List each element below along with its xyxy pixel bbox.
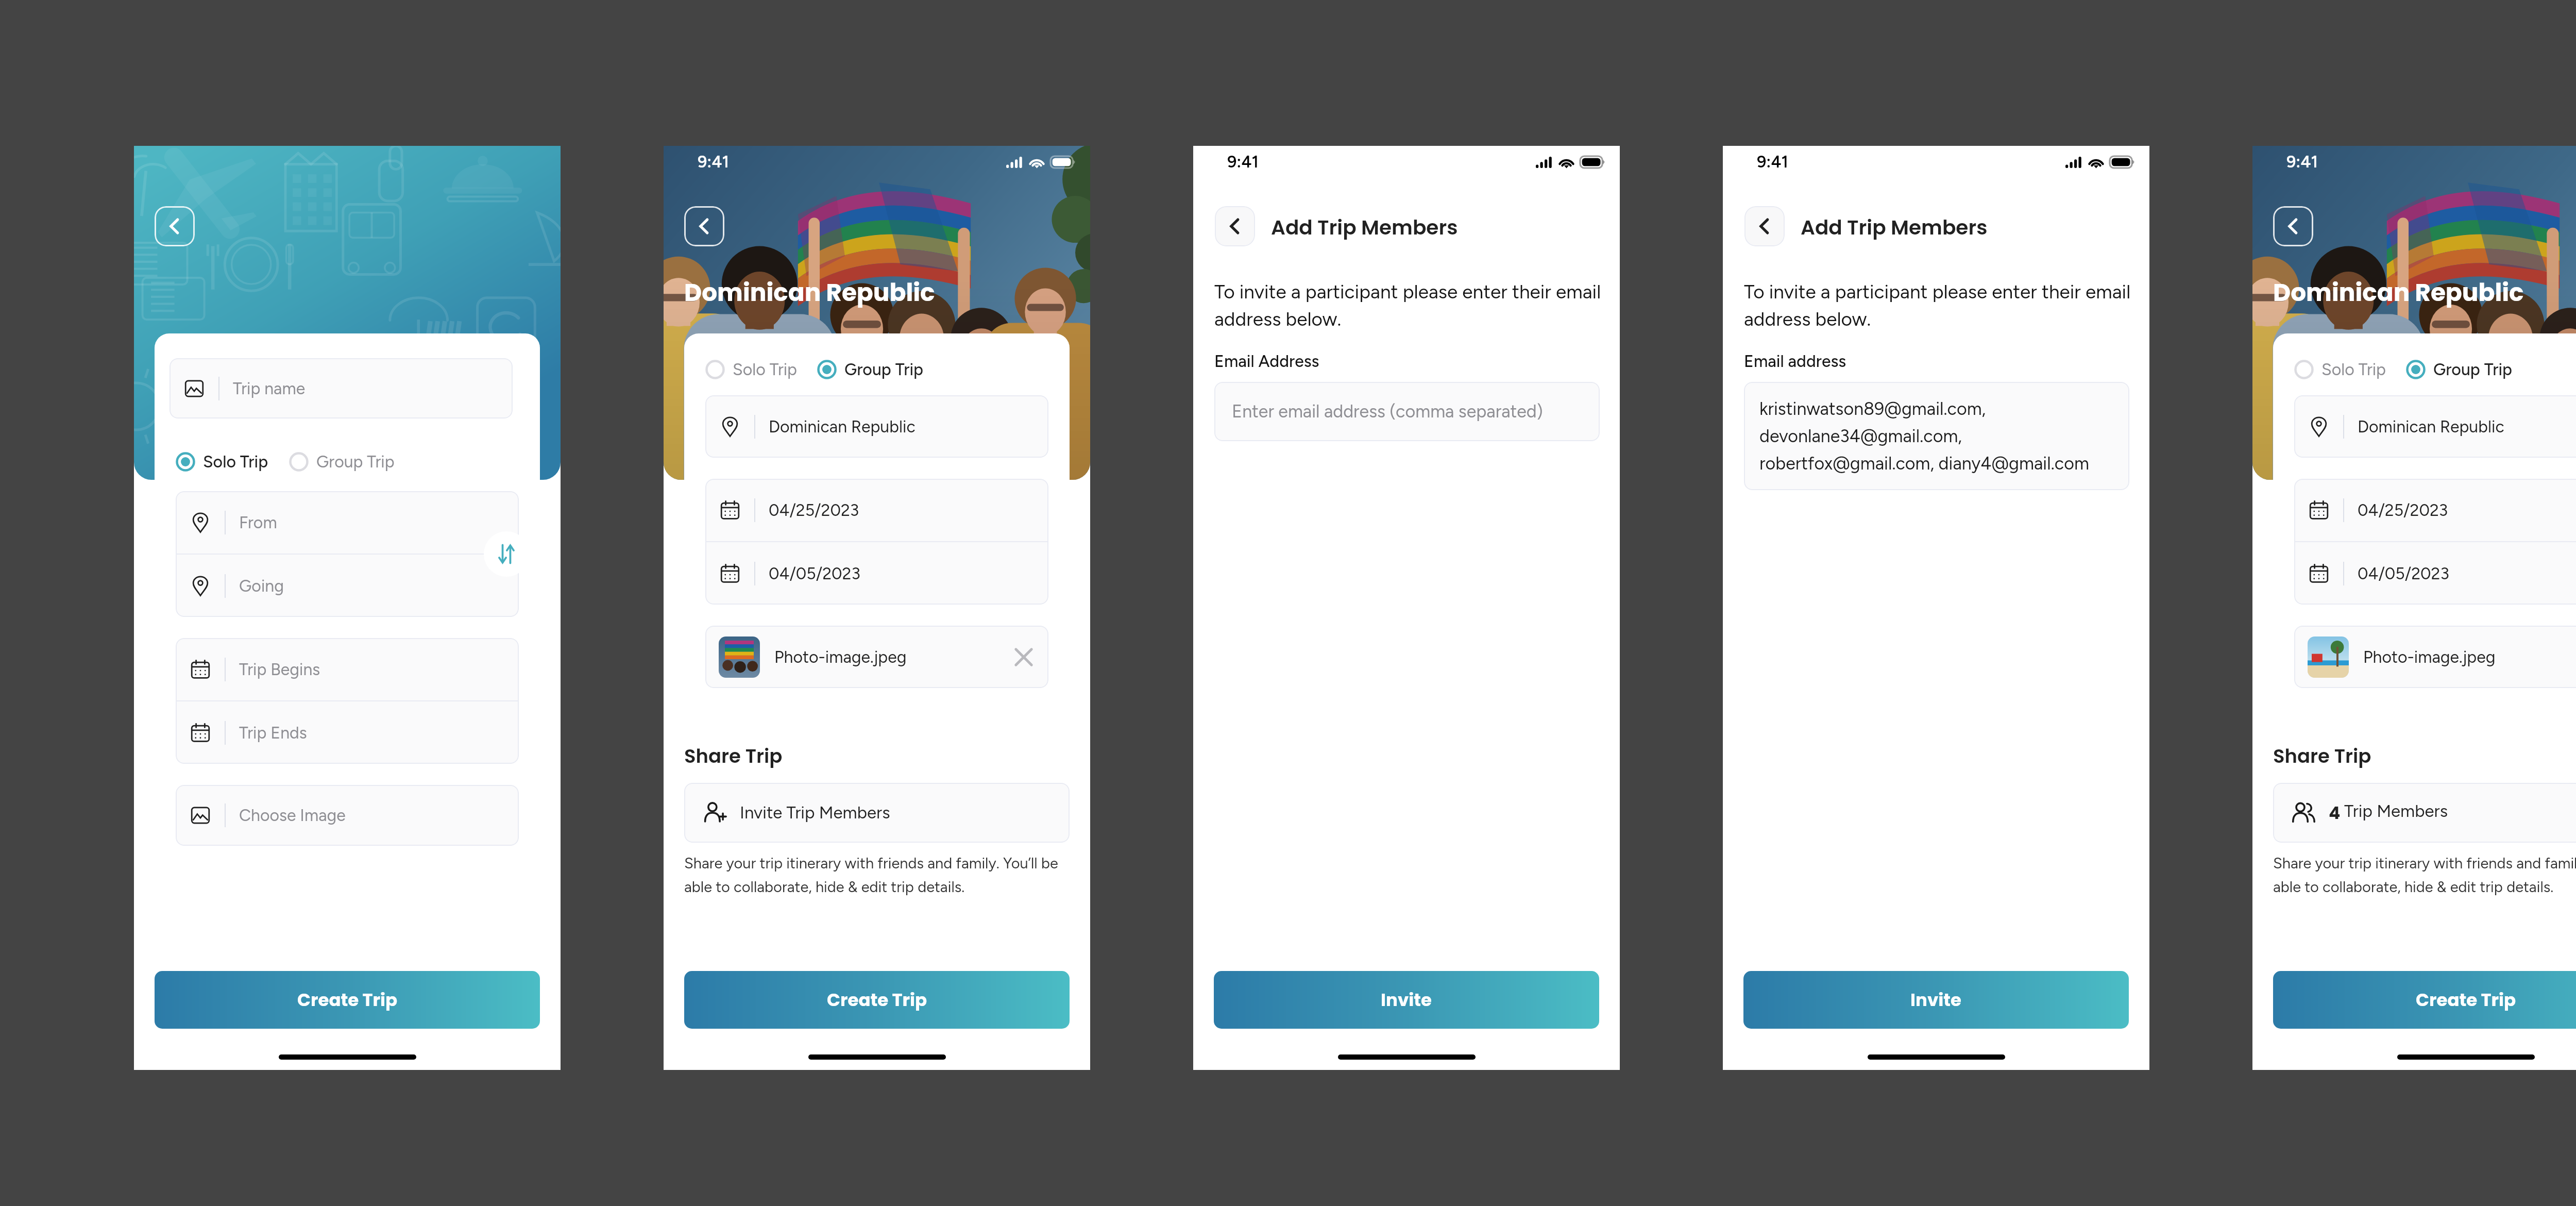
staticText: Share Trip xyxy=(2273,743,2371,769)
button[interactable]: Solo Trip xyxy=(705,360,798,379)
staticText: 9:41 xyxy=(1227,152,1259,172)
staticText: Group Trip xyxy=(844,360,924,379)
staticText: 9:41 xyxy=(1757,152,1788,172)
button[interactable]: Remove photo xyxy=(1009,643,1038,672)
staticText: Invite xyxy=(1381,987,1432,1012)
staticText: From xyxy=(239,513,277,532)
button[interactable]: Solo Trip xyxy=(2294,360,2386,379)
button[interactable]: Back xyxy=(155,206,195,246)
button[interactable]: Dominican Republic xyxy=(705,395,1048,458)
button[interactable]: Invite xyxy=(1214,971,1599,1029)
button[interactable]: Solo Trip xyxy=(176,452,268,472)
button[interactable]: Dominican Republic xyxy=(2294,395,2576,458)
button[interactable]: 4 xyxy=(2273,783,2576,843)
button[interactable]: Create Trip xyxy=(155,971,540,1029)
staticText: 04/25/2023 xyxy=(2358,500,2448,520)
staticText: 9:41 xyxy=(698,152,729,172)
staticText: Email Address xyxy=(1214,351,1319,371)
staticText: Create Trip xyxy=(297,987,398,1012)
button[interactable]: Photo-image.jpeg xyxy=(2294,626,2576,688)
button[interactable]: Swap from and going xyxy=(484,531,529,577)
staticText: Solo Trip xyxy=(203,452,268,472)
button[interactable]: Trip Ends xyxy=(176,701,519,764)
staticText: Dominican Republic xyxy=(769,417,916,437)
button[interactable]: Choose Image xyxy=(176,785,519,846)
staticText: Solo Trip xyxy=(733,360,798,379)
staticText: 04/05/2023 xyxy=(769,564,860,583)
staticText: Dominican Republic xyxy=(684,276,935,310)
staticText: Photo-image.jpeg xyxy=(2363,647,2496,667)
staticText: kristinwatson89@gmail.com, devonlane34@g… xyxy=(1759,398,2127,474)
button[interactable]: Trip name xyxy=(170,358,513,418)
button[interactable]: Back xyxy=(684,206,724,246)
staticText: 04/25/2023 xyxy=(769,500,859,520)
staticText: Trip Ends xyxy=(239,723,307,743)
staticText: Trip Members xyxy=(2344,801,2448,822)
button[interactable]: 04/05/2023 xyxy=(2294,542,2576,605)
staticText: 9:41 xyxy=(2286,152,2318,172)
staticText: 4 xyxy=(2329,801,2344,825)
staticText: Going xyxy=(239,576,284,596)
staticText: Group Trip xyxy=(316,452,395,472)
staticText: Create Trip xyxy=(827,987,927,1012)
staticText: Photo-image.jpeg xyxy=(774,647,907,667)
button[interactable]: Invite xyxy=(1743,971,2129,1029)
staticText: Trip Begins xyxy=(239,660,320,679)
staticText: To invite a participant please enter the… xyxy=(1214,280,1616,330)
staticText: Enter email address (comma separated) xyxy=(1232,401,1543,422)
staticText: Add Trip Members xyxy=(1271,213,1458,242)
button[interactable]: 04/25/2023 xyxy=(2294,479,2576,541)
button[interactable]: Group Trip xyxy=(2406,360,2513,379)
staticText: Dominican Republic xyxy=(2358,417,2504,437)
button[interactable]: Trip Begins xyxy=(176,638,519,700)
staticText: 04/05/2023 xyxy=(2358,564,2449,583)
staticText: Invite xyxy=(1910,987,1962,1012)
button[interactable]: Invite Trip Members xyxy=(684,783,1070,843)
button[interactable]: Group Trip xyxy=(817,360,924,379)
button[interactable]: Back xyxy=(1215,206,1255,246)
button[interactable]: Enter email address (comma separated) xyxy=(1214,382,1600,441)
staticText: Solo Trip xyxy=(2321,360,2386,379)
staticText: Trip name xyxy=(233,379,306,398)
button[interactable]: kristinwatson89@gmail.com, devonlane34@g… xyxy=(1744,382,2129,490)
button[interactable]: Group Trip xyxy=(289,452,395,472)
staticText: Create Trip xyxy=(2416,987,2516,1012)
staticText: Group Trip xyxy=(2433,360,2513,379)
staticText: Share Trip xyxy=(684,743,783,769)
staticText: Share your trip itinerary with friends a… xyxy=(684,854,1070,896)
staticText: Choose Image xyxy=(239,806,346,825)
button[interactable]: Photo-image.jpeg xyxy=(705,626,1048,688)
staticText: Add Trip Members xyxy=(1801,213,1988,242)
button[interactable]: From xyxy=(176,491,519,554)
button[interactable]: Going xyxy=(176,555,519,617)
staticText: Invite Trip Members xyxy=(740,802,890,823)
staticText: Share your trip itinerary with friends a… xyxy=(2273,854,2576,896)
button[interactable]: 04/25/2023 xyxy=(705,479,1048,541)
button[interactable]: Back xyxy=(2273,206,2313,246)
button[interactable]: Back xyxy=(1744,206,1785,246)
staticText: Dominican Republic xyxy=(2273,276,2524,310)
button[interactable]: Create Trip xyxy=(2273,971,2576,1029)
staticText: To invite a participant please enter the… xyxy=(1744,280,2146,330)
staticText: Email address xyxy=(1744,351,1846,371)
button[interactable]: Create Trip xyxy=(684,971,1070,1029)
button[interactable]: 04/05/2023 xyxy=(705,542,1048,605)
